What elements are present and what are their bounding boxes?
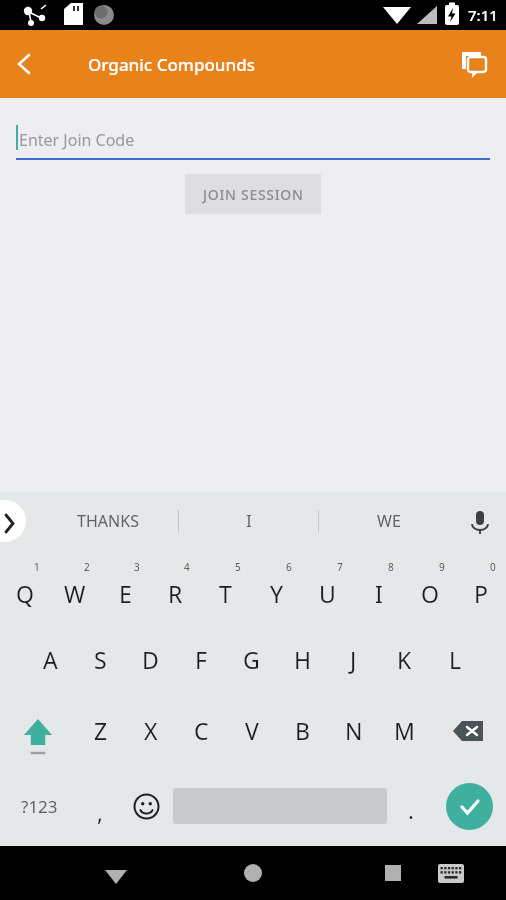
staticText: I — [246, 510, 252, 532]
staticText: C — [194, 715, 209, 746]
button[interactable]: 8 — [353, 550, 404, 624]
button[interactable]: 2 — [50, 550, 100, 624]
button[interactable]: K — [379, 624, 430, 695]
button[interactable]: C — [176, 695, 226, 766]
button[interactable]: More suggestions — [0, 500, 26, 542]
staticText: 6 — [286, 560, 292, 574]
button[interactable]: 4 — [150, 550, 200, 624]
staticText: 4 — [184, 560, 190, 574]
button[interactable]: 1 — [0, 550, 50, 624]
staticText: 9 — [439, 560, 445, 574]
staticText: A — [43, 644, 58, 675]
staticText: 0 — [490, 560, 496, 574]
staticText: X — [144, 715, 158, 746]
staticText: 8 — [388, 560, 394, 574]
button[interactable]: ?123 — [0, 766, 78, 846]
staticText: W — [64, 578, 86, 609]
staticText: I — [375, 578, 383, 609]
staticText: S — [94, 644, 107, 675]
staticText: , — [97, 797, 103, 827]
staticText: P — [474, 578, 488, 609]
button[interactable]: 6 — [251, 550, 302, 624]
staticText: Z — [94, 715, 108, 746]
button[interactable]: 5 — [200, 550, 251, 624]
button[interactable]: Z — [76, 695, 126, 766]
staticText: 7 — [337, 560, 343, 574]
staticText: 7:11 — [468, 5, 498, 25]
button[interactable]: Back — [0, 40, 48, 88]
button[interactable]: Emoji — [122, 766, 170, 846]
button[interactable]: WE — [319, 492, 458, 550]
button[interactable]: Voice input — [456, 498, 502, 544]
button[interactable]: Change keyboard — [424, 846, 478, 900]
staticText: N — [345, 715, 363, 746]
staticText: E — [119, 578, 132, 609]
staticText: 1 — [34, 560, 40, 574]
staticText: L — [449, 644, 462, 675]
button[interactable]: V — [226, 695, 277, 766]
button[interactable]: X — [126, 695, 176, 766]
button[interactable]: Recent apps — [366, 846, 420, 900]
staticText: Organic Compounds — [88, 53, 255, 76]
staticText: H — [294, 644, 312, 675]
button[interactable]: D — [125, 624, 175, 695]
staticText: THANKS — [77, 510, 139, 532]
staticText: 2 — [84, 560, 90, 574]
button[interactable]: 3 — [100, 550, 150, 624]
staticText: T — [219, 578, 232, 609]
staticText: K — [397, 644, 412, 675]
button[interactable]: M — [379, 695, 430, 766]
staticText: F — [195, 644, 207, 675]
staticText: O — [421, 578, 439, 609]
staticText: ?123 — [21, 795, 58, 818]
staticText: J — [350, 644, 357, 675]
button[interactable]: Enter — [432, 766, 506, 846]
button[interactable]: . — [390, 766, 432, 846]
button[interactable]: JOIN SESSION — [185, 174, 321, 214]
staticText: 3 — [134, 560, 140, 574]
staticText: Y — [270, 578, 284, 609]
staticText: M — [394, 715, 415, 746]
button[interactable]: A — [25, 624, 75, 695]
button[interactable]: 0 — [455, 550, 506, 624]
staticText: WE — [377, 510, 401, 532]
button[interactable]: I — [179, 492, 318, 550]
button[interactable]: Home — [226, 846, 280, 900]
staticText: U — [319, 578, 336, 609]
staticText: G — [243, 644, 260, 675]
button[interactable]: J — [328, 624, 379, 695]
staticText: R — [168, 578, 183, 609]
staticText: 5 — [235, 560, 241, 574]
button[interactable]: B — [277, 695, 328, 766]
button[interactable]: H — [277, 624, 328, 695]
button[interactable]: G — [226, 624, 277, 695]
button[interactable]: F — [175, 624, 226, 695]
staticText: JOIN SESSION — [203, 185, 304, 204]
staticText: Enter Join Code — [19, 129, 135, 151]
button[interactable]: Messages — [448, 38, 500, 90]
button[interactable]: 9 — [404, 550, 455, 624]
staticText: D — [142, 644, 159, 675]
button[interactable]: THANKS — [38, 492, 178, 550]
staticText: V — [245, 715, 259, 746]
button[interactable]: Hide keyboard — [87, 846, 141, 900]
button[interactable]: L — [430, 624, 481, 695]
staticText: . — [408, 795, 414, 825]
button[interactable]: N — [328, 695, 379, 766]
button[interactable]: Backspace — [430, 695, 506, 766]
staticText: Q — [16, 578, 34, 609]
button[interactable]: , — [78, 766, 122, 846]
staticText: B — [295, 715, 310, 746]
button[interactable]: Shift — [0, 695, 76, 766]
button[interactable]: S — [75, 624, 125, 695]
button[interactable]: 7 — [302, 550, 353, 624]
